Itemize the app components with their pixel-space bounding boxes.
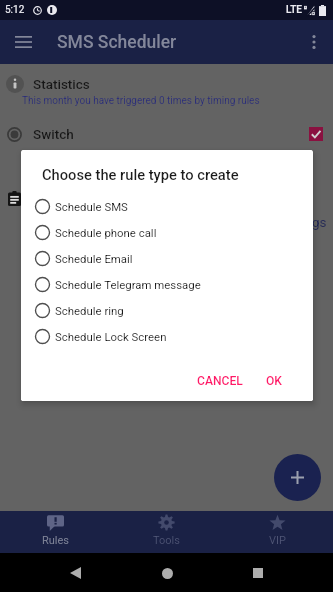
button[interactable]: Schedule Email xyxy=(21,245,313,271)
staticText: Tools xyxy=(153,534,180,547)
staticText: Schedule SMS xyxy=(55,200,128,213)
button[interactable]: OK xyxy=(259,368,289,394)
button[interactable]: Switch xyxy=(0,119,333,149)
button[interactable]: Rules xyxy=(0,511,111,553)
button[interactable]: CANCEL xyxy=(190,368,250,394)
button[interactable]: VIP xyxy=(222,511,333,553)
button[interactable]: Tools xyxy=(111,511,222,553)
staticText: Switch xyxy=(33,126,74,142)
staticText: VIP xyxy=(269,534,286,547)
button[interactable]: Home xyxy=(151,557,183,589)
button[interactable]: Recent apps xyxy=(242,557,274,589)
button[interactable]: Schedule Lock Screen xyxy=(21,323,313,349)
button[interactable]: Statistics xyxy=(0,66,333,102)
button[interactable]: Schedule Telegram message xyxy=(21,271,313,297)
button[interactable]: Open navigation drawer xyxy=(9,28,37,56)
staticText: LTE xyxy=(286,4,302,16)
button[interactable]: Enabled xyxy=(309,127,323,141)
staticText: Schedule ring xyxy=(55,304,124,317)
staticText: OK xyxy=(266,374,282,388)
staticText: Rules xyxy=(42,534,70,547)
staticText: Choose the rule type to create xyxy=(42,166,239,183)
button[interactable]: Back xyxy=(59,557,91,589)
staticText: Schedule Email xyxy=(55,252,133,265)
staticText: 5:12 xyxy=(5,4,25,16)
staticText: gs xyxy=(312,214,327,230)
button[interactable]: Schedule phone call xyxy=(21,219,313,245)
staticText: This month you have triggered 0 times by… xyxy=(22,95,260,107)
staticText: Schedule Telegram message xyxy=(55,278,201,291)
staticText: Schedule phone call xyxy=(55,226,157,239)
button[interactable]: More options xyxy=(300,28,328,56)
staticText: Statistics xyxy=(33,76,90,92)
staticText: CANCEL xyxy=(197,374,243,388)
staticText: SMS Scheduler xyxy=(57,32,177,53)
button[interactable]: Add rule xyxy=(274,454,321,501)
button[interactable]: Schedule SMS xyxy=(21,193,313,219)
staticText: Schedule Lock Screen xyxy=(55,330,167,343)
button[interactable]: Schedule ring xyxy=(21,297,313,323)
